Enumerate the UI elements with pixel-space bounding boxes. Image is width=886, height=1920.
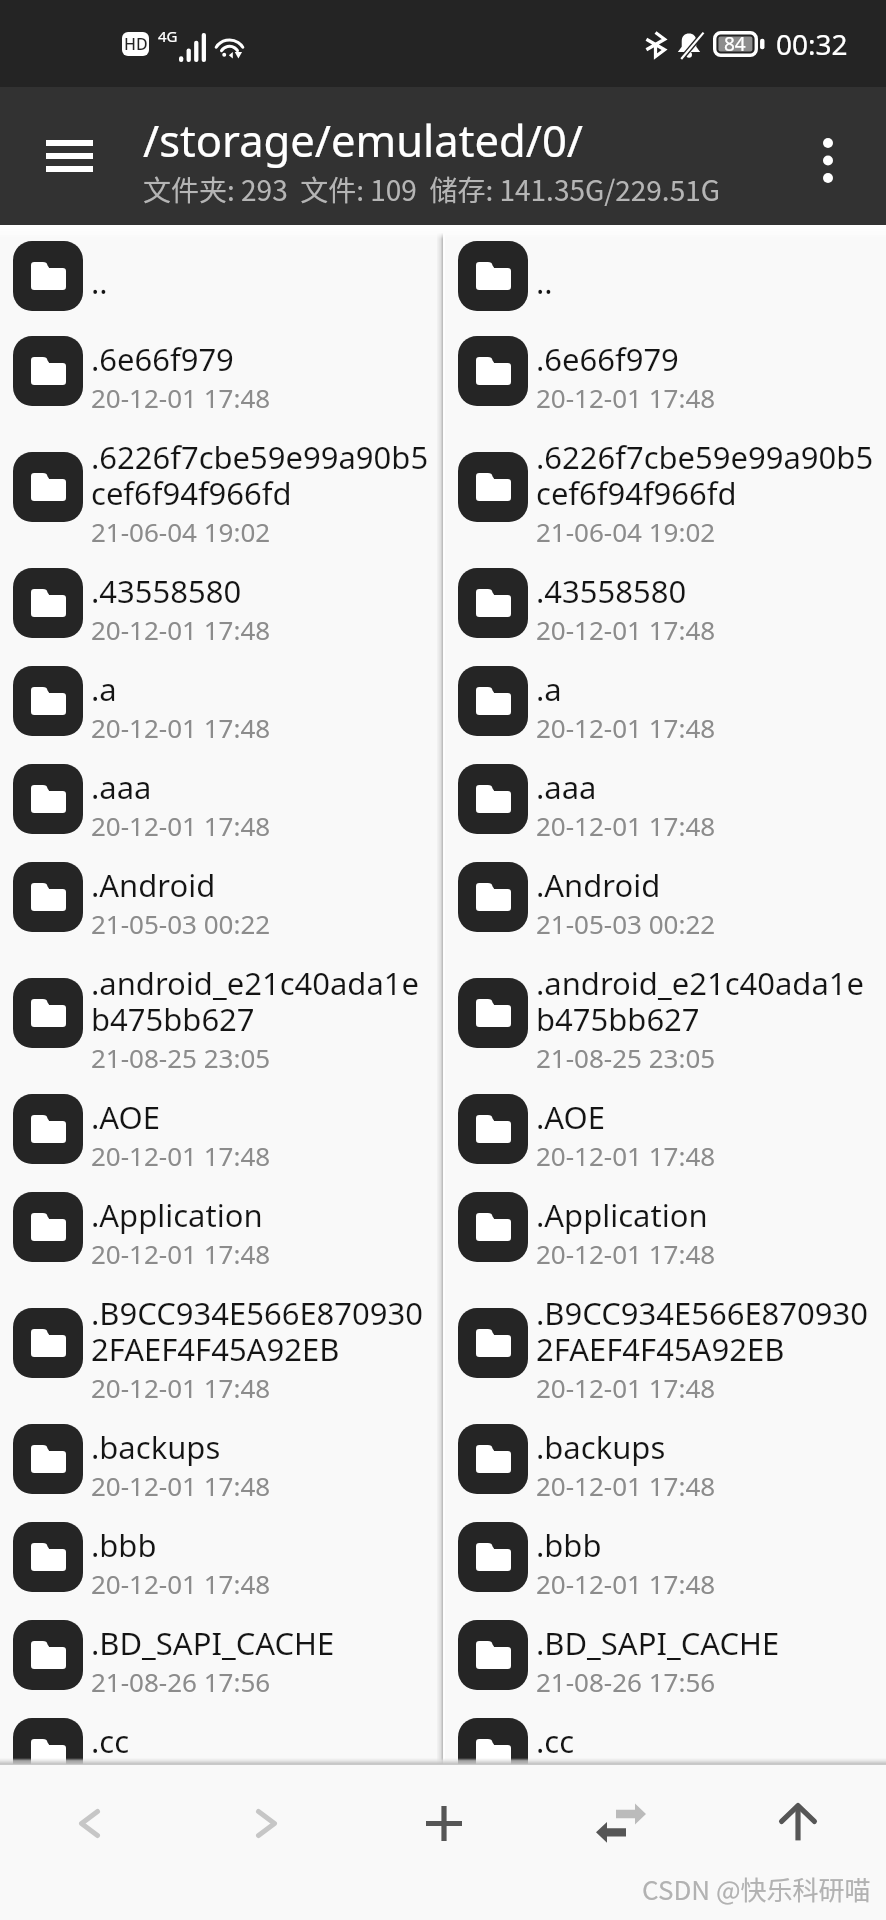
staticText: 20-12-01 17:48: [536, 710, 716, 745]
button[interactable]: .android_e21c40ada1eb475bb627: [445, 940, 886, 1074]
button[interactable]: Switch panes: [532, 1765, 709, 1881]
button[interactable]: Forward: [178, 1765, 355, 1881]
button[interactable]: .B9CC934E566E8709302FAEF4F45A92EB: [445, 1270, 886, 1404]
button[interactable]: .43558580: [445, 548, 886, 646]
button[interactable]: .aaa: [0, 744, 437, 842]
staticText: 21-08-25 23:05: [91, 1040, 271, 1075]
staticText: .aaa: [91, 766, 152, 808]
staticText: 21-05-03 00:22: [536, 906, 716, 941]
staticText: .6e66f979: [91, 338, 234, 380]
button[interactable]: .android_e21c40ada1eb475bb627: [0, 940, 437, 1074]
staticText: 21-08-26 17:56: [91, 1664, 271, 1699]
button[interactable]: .BD_SAPI_CACHE: [0, 1600, 437, 1698]
staticText: 20-12-01 17:48: [91, 1370, 271, 1405]
button[interactable]: ..: [0, 225, 437, 316]
staticText: .Application: [91, 1194, 263, 1236]
staticText: .6e66f979: [536, 338, 679, 380]
staticText: 21-06-04 19:02: [91, 514, 271, 549]
staticText: 20-12-01 17:48: [536, 1370, 716, 1405]
staticText: .B9CC934E566E8709302FAEF4F45A92EB: [536, 1292, 881, 1370]
button[interactable]: .Application: [445, 1172, 886, 1270]
staticText: HD: [124, 33, 148, 55]
button[interactable]: .a: [445, 646, 886, 744]
staticText: 20-12-01 17:48: [91, 1138, 271, 1173]
staticText: .Android: [91, 864, 216, 906]
staticText: /storage/emulated/0/: [143, 110, 583, 169]
staticText: 20-12-01 17:48: [536, 1236, 716, 1271]
staticText: 4G: [158, 26, 178, 46]
button[interactable]: .cc: [0, 1698, 437, 1765]
button[interactable]: .6e66f979: [0, 316, 437, 414]
staticText: 21-06-04 19:02: [536, 514, 716, 549]
button[interactable]: Back: [0, 1765, 178, 1881]
staticText: .AOE: [536, 1096, 605, 1138]
button[interactable]: .bbb: [0, 1502, 437, 1600]
staticText: .aaa: [536, 766, 597, 808]
button[interactable]: .6e66f979: [445, 316, 886, 414]
staticText: .B9CC934E566E8709302FAEF4F45A92EB: [91, 1292, 437, 1370]
staticText: .6226f7cbe59e99a90b5cef6f94f966fd: [536, 436, 881, 514]
staticText: .cc: [91, 1720, 130, 1762]
button[interactable]: .B9CC934E566E8709302FAEF4F45A92EB: [0, 1270, 437, 1404]
button[interactable]: .Android: [0, 842, 437, 940]
staticText: .bbb: [91, 1524, 157, 1566]
staticText: CSDN @快乐科研喵: [642, 1870, 871, 1908]
staticText: .bbb: [536, 1524, 602, 1566]
staticText: 20-12-01 17:48: [536, 612, 716, 647]
staticText: .backups: [536, 1426, 666, 1468]
staticText: 20-12-01 17:48: [91, 1762, 271, 1765]
staticText: .BD_SAPI_CACHE: [536, 1622, 780, 1664]
button[interactable]: More options: [783, 115, 873, 205]
staticText: 00:32: [776, 25, 848, 63]
staticText: 20-12-01 17:48: [536, 808, 716, 843]
staticText: .43558580: [91, 570, 242, 612]
button[interactable]: .Android: [445, 842, 886, 940]
button[interactable]: .bbb: [445, 1502, 886, 1600]
staticText: 20-12-01 17:48: [536, 1468, 716, 1503]
staticText: .a: [536, 668, 562, 710]
button[interactable]: .backups: [445, 1404, 886, 1502]
staticText: .cc: [536, 1720, 575, 1762]
button[interactable]: .backups: [0, 1404, 437, 1502]
staticText: 21-08-26 17:56: [536, 1664, 716, 1699]
staticText: 20-12-01 17:48: [91, 1236, 271, 1271]
staticText: 20-12-01 17:48: [91, 710, 271, 745]
staticText: .android_e21c40ada1eb475bb627: [536, 962, 881, 1040]
button[interactable]: ..: [445, 225, 886, 316]
staticText: 20-12-01 17:48: [536, 1762, 716, 1765]
button[interactable]: .6226f7cbe59e99a90b5cef6f94f966fd: [0, 414, 437, 548]
staticText: .Application: [536, 1194, 708, 1236]
staticText: 文件夹: 293 文件: 109 储存: 141.35G/229.51G: [143, 169, 721, 210]
staticText: .AOE: [91, 1096, 160, 1138]
staticText: 20-12-01 17:48: [91, 808, 271, 843]
button[interactable]: .6226f7cbe59e99a90b5cef6f94f966fd: [445, 414, 886, 548]
staticText: 20-12-01 17:48: [536, 1566, 716, 1601]
staticText: 20-12-01 17:48: [91, 380, 271, 415]
button[interactable]: .BD_SAPI_CACHE: [445, 1600, 886, 1698]
staticText: 20-12-01 17:48: [536, 1138, 716, 1173]
button[interactable]: .Application: [0, 1172, 437, 1270]
button[interactable]: Up: [709, 1765, 886, 1881]
button[interactable]: .a: [0, 646, 437, 744]
staticText: .6226f7cbe59e99a90b5cef6f94f966fd: [91, 436, 437, 514]
staticText: 21-08-25 23:05: [536, 1040, 716, 1075]
staticText: .backups: [91, 1426, 221, 1468]
button[interactable]: .cc: [445, 1698, 886, 1765]
staticText: 20-12-01 17:48: [91, 1566, 271, 1601]
staticText: .43558580: [536, 570, 687, 612]
staticText: ..: [536, 261, 553, 303]
button[interactable]: .aaa: [445, 744, 886, 842]
staticText: 21-05-03 00:22: [91, 906, 271, 941]
staticText: ..: [91, 261, 108, 303]
staticText: 20-12-01 17:48: [91, 1468, 271, 1503]
button[interactable]: .AOE: [0, 1074, 437, 1172]
button[interactable]: .43558580: [0, 548, 437, 646]
staticText: 20-12-01 17:48: [91, 612, 271, 647]
button[interactable]: .AOE: [445, 1074, 886, 1172]
staticText: .android_e21c40ada1eb475bb627: [91, 962, 437, 1040]
staticText: 84: [724, 31, 746, 57]
staticText: .BD_SAPI_CACHE: [91, 1622, 335, 1664]
button[interactable]: New: [355, 1765, 532, 1881]
button[interactable]: Menu: [21, 108, 117, 204]
staticText: 20-12-01 17:48: [536, 380, 716, 415]
